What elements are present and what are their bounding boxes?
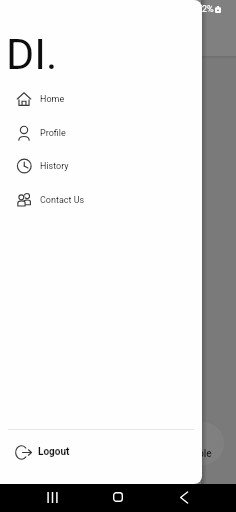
- button[interactable]: Back: [165, 484, 203, 512]
- staticText: DI.: [6, 29, 58, 79]
- button[interactable]: Logout: [0, 437, 202, 467]
- staticText: Sample: [178, 448, 212, 460]
- staticText: 52%: [197, 4, 214, 15]
- button[interactable]: Home: [0, 82, 202, 116]
- button[interactable]: History: [0, 149, 202, 183]
- button[interactable]: Recent apps: [33, 484, 71, 512]
- staticText: Logout: [38, 446, 70, 458]
- staticText: History: [40, 161, 69, 172]
- staticText: Home: [40, 94, 65, 105]
- other: Battery: [215, 6, 221, 13]
- button[interactable]: Home: [99, 484, 137, 512]
- button[interactable]: Profile: [0, 116, 202, 150]
- button[interactable]: Contact Us: [0, 183, 202, 217]
- staticText: Contact Us: [40, 195, 85, 206]
- staticText: Profile: [40, 128, 66, 139]
